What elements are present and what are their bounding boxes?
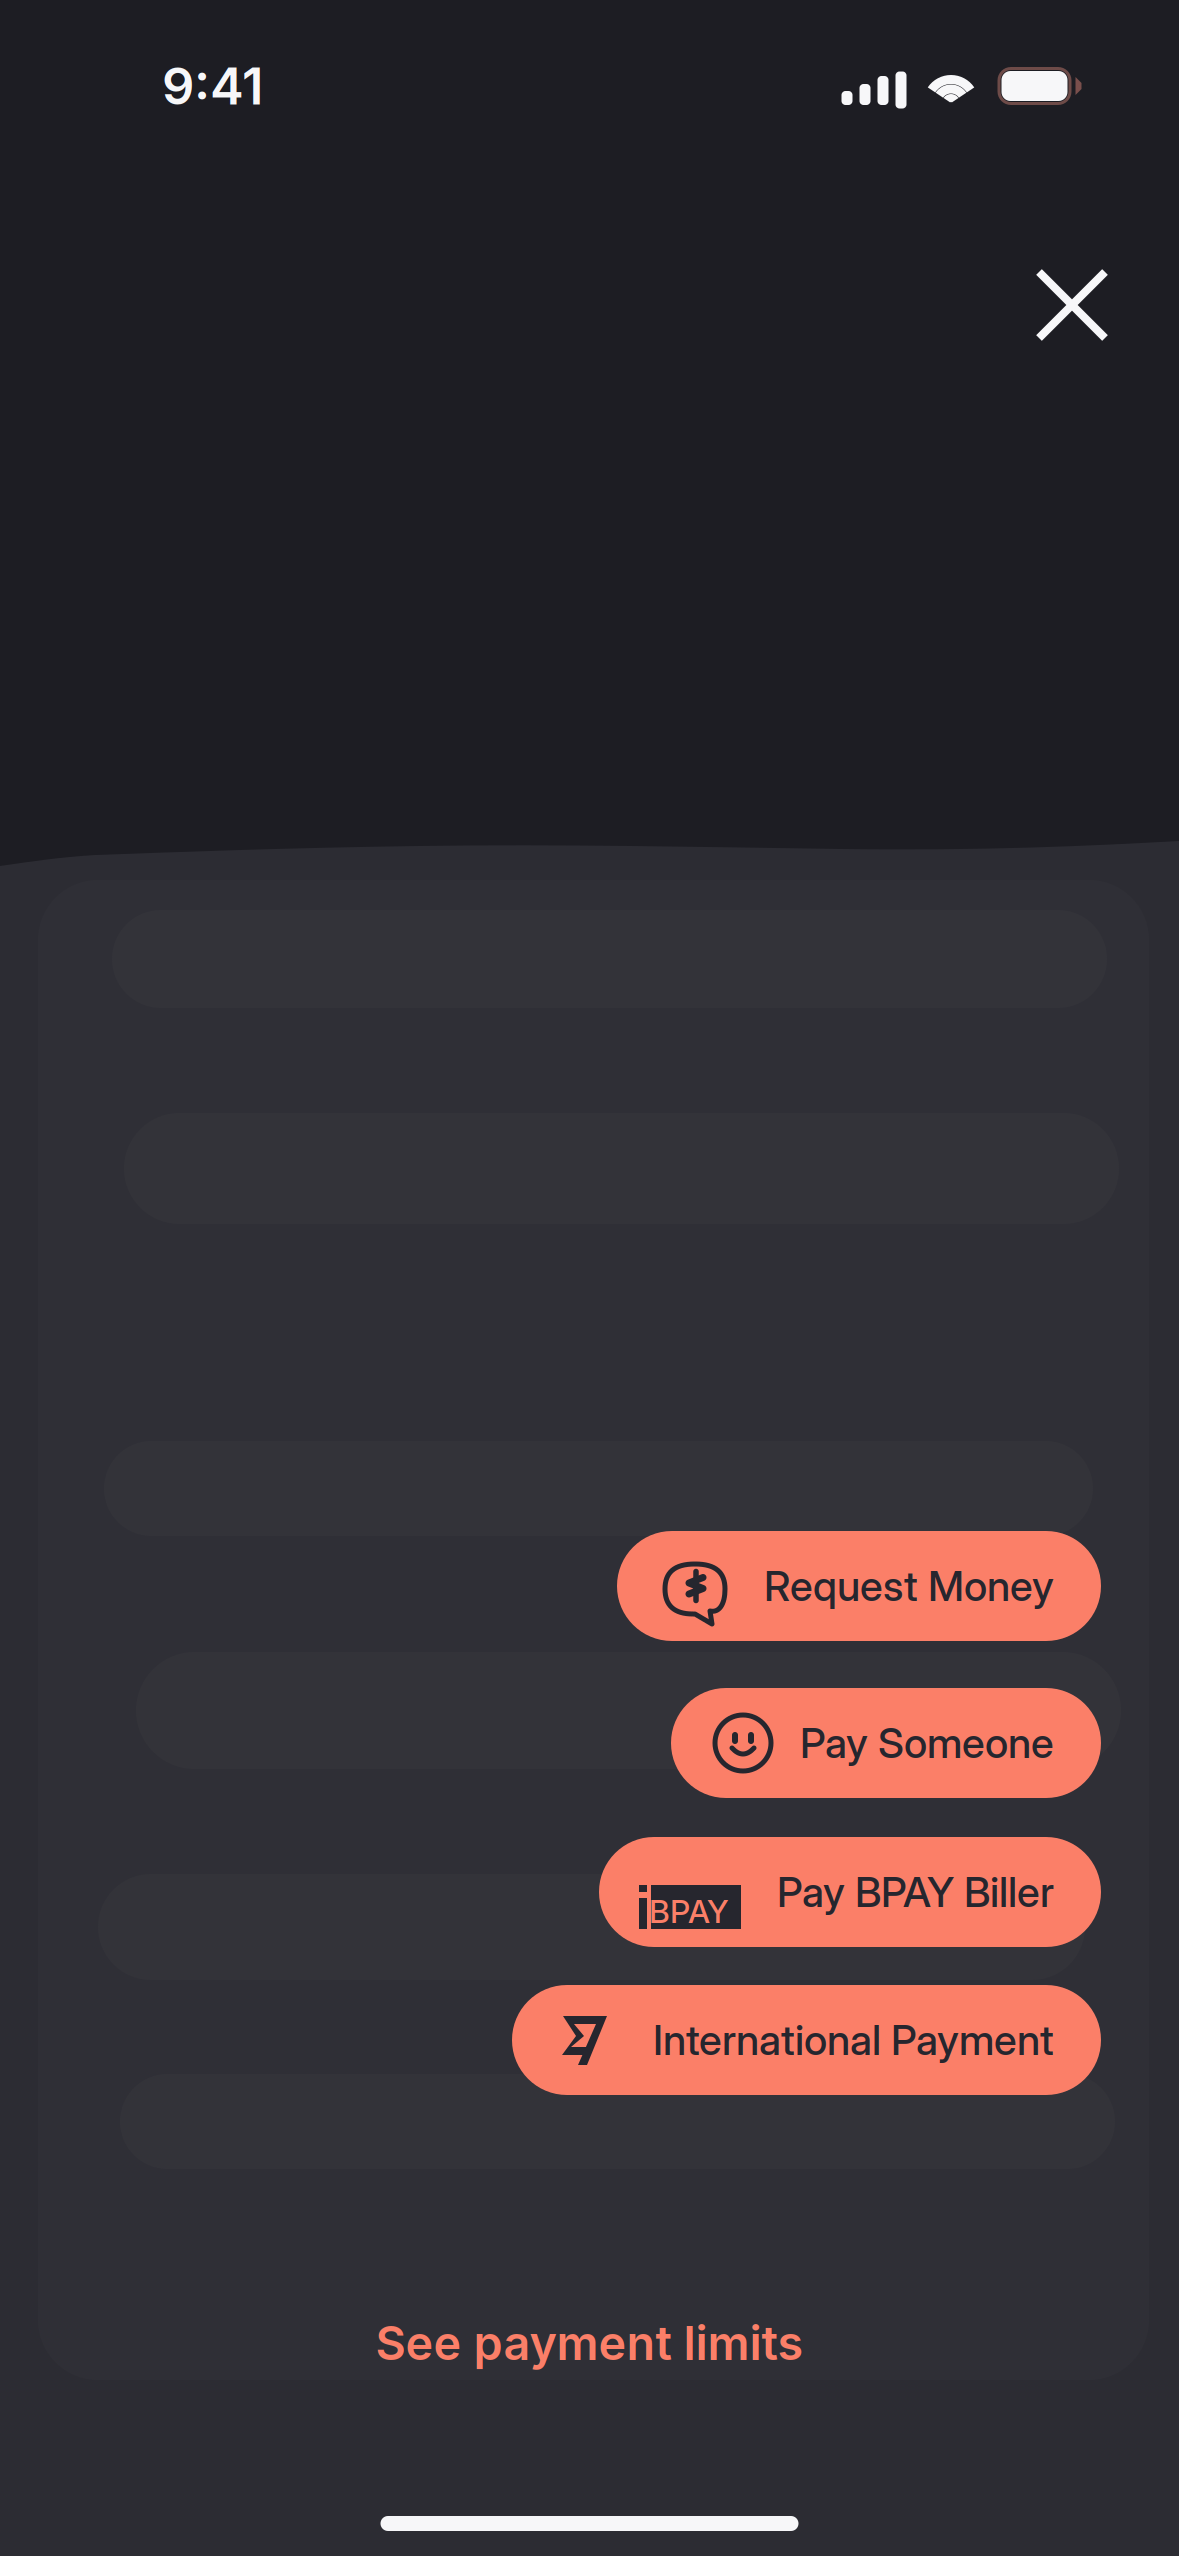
- button[interactable]: Pay Someone: [671, 1688, 1101, 1798]
- button[interactable]: Request Money: [617, 1531, 1101, 1641]
- button[interactable]: See payment limits: [375, 2301, 803, 2385]
- staticText: Pay BPAY Biller: [777, 1867, 1054, 1917]
- staticText: See payment limits: [375, 2315, 803, 2371]
- staticText: International Payment: [653, 2015, 1054, 2065]
- staticText: BPAY: [649, 1892, 729, 1931]
- button[interactable]: BPAY: [599, 1837, 1101, 1947]
- staticText: 9:41: [162, 55, 263, 117]
- staticText: Request Money: [764, 1561, 1054, 1611]
- button[interactable]: International Payment: [512, 1985, 1101, 2095]
- staticText: Pay Someone: [800, 1718, 1054, 1768]
- button[interactable]: Close: [1002, 235, 1134, 367]
